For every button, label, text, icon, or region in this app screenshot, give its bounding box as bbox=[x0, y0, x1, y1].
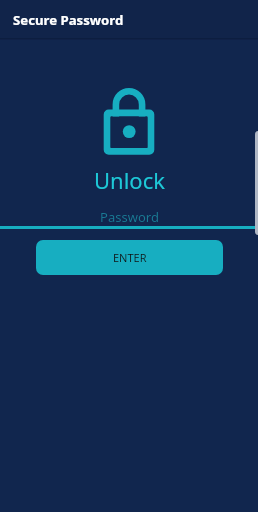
staticText: Secure Password bbox=[13, 11, 124, 29]
button[interactable]: Secure Password bbox=[0, 0, 258, 38]
button[interactable]: Password bbox=[0, 200, 258, 226]
staticText: Password bbox=[100, 208, 159, 226]
other: Lock bbox=[0, 40, 258, 160]
button[interactable]: ENTER bbox=[36, 240, 223, 275]
staticText: ENTER bbox=[113, 250, 147, 265]
staticText: Unlock bbox=[94, 165, 165, 195]
